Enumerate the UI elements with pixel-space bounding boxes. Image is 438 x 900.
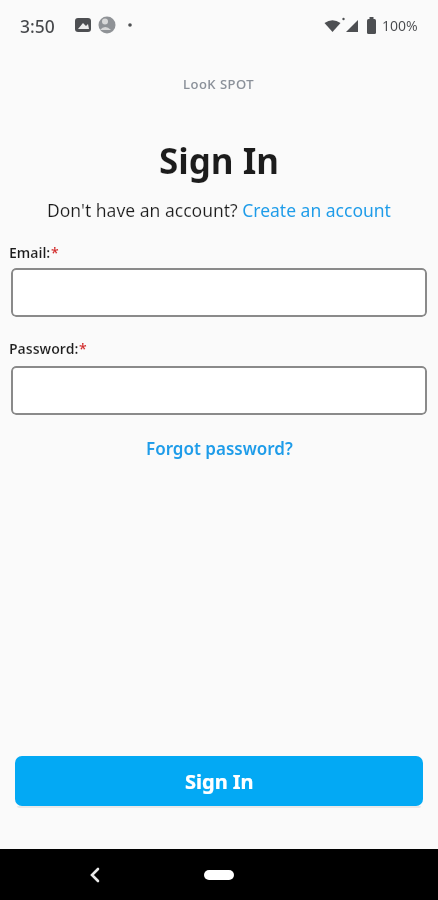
staticText: Email: [9,243,51,262]
button[interactable] [80,860,110,890]
button[interactable] [11,268,427,317]
staticText: * [51,243,59,262]
staticText: Sign In [159,137,280,185]
staticText: Password: [9,339,79,358]
button[interactable]: Sign In [15,756,423,806]
button[interactable] [204,870,234,880]
button[interactable] [11,366,427,415]
staticText: 3:50 [20,14,55,38]
button[interactable]: Forgot password? [146,437,293,460]
button[interactable]: Don't have an account? Create an account [47,198,391,222]
staticText: LooK SPOT [183,75,255,93]
staticText: Sign In [185,768,254,795]
staticText: * [79,339,87,358]
staticText: 100% [382,16,418,35]
